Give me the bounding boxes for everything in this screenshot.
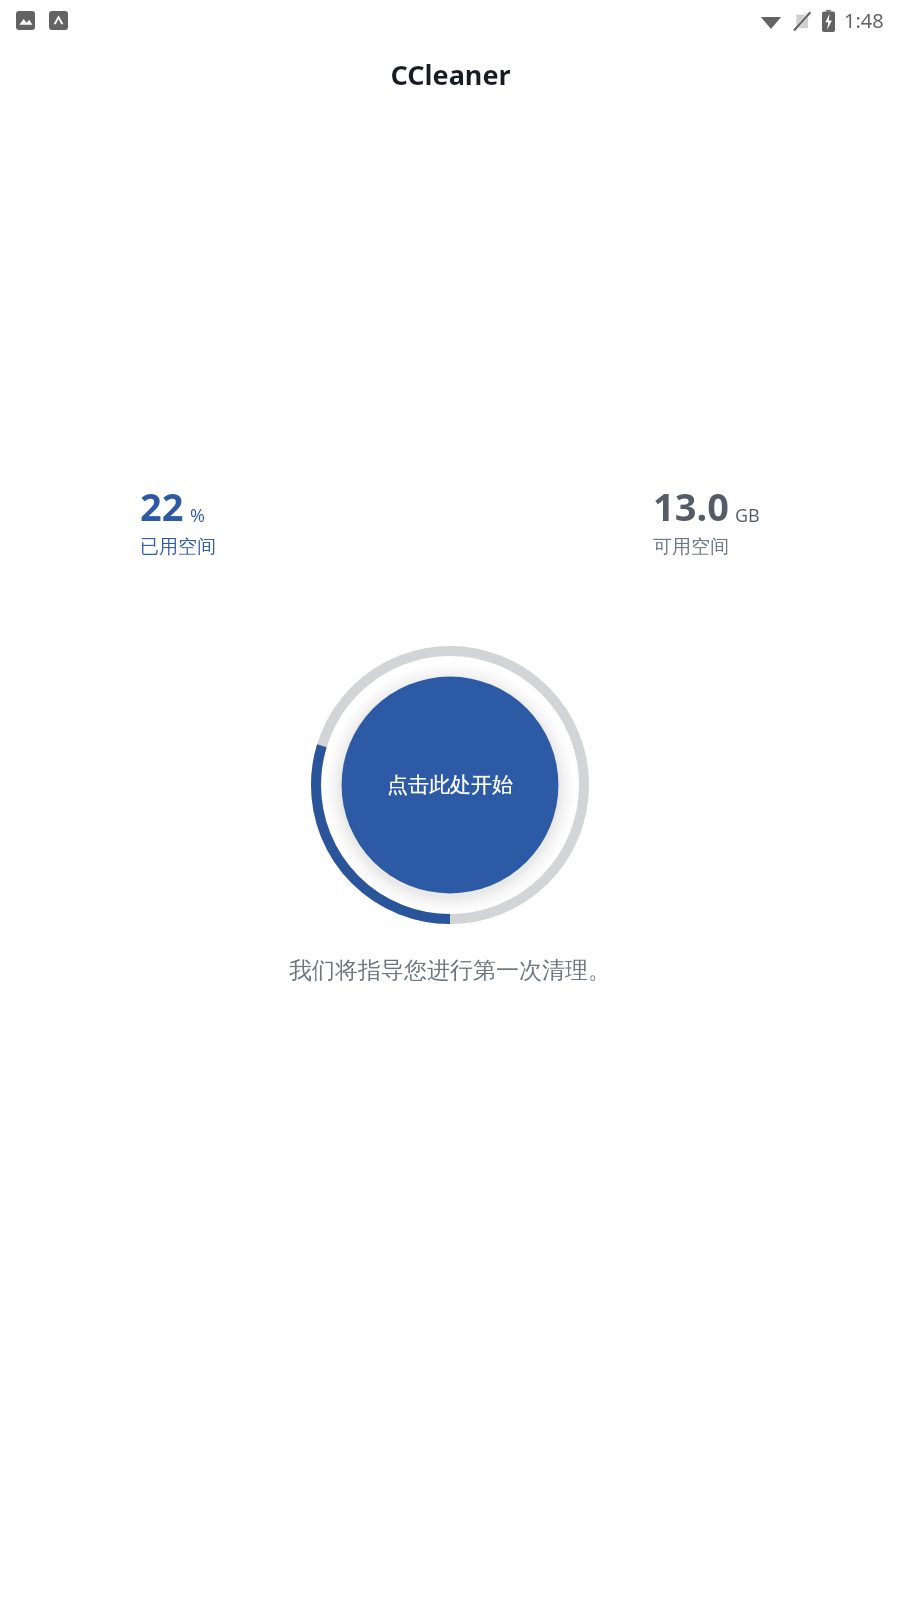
staticText: 点击此处开始 xyxy=(387,772,513,798)
staticText: 已用空间 xyxy=(140,535,216,559)
staticText: 我们将指导您进行第一次清理。 xyxy=(289,956,611,985)
staticText: % xyxy=(190,503,205,528)
staticText: 1:48 xyxy=(844,7,884,34)
staticText: 可用空间 xyxy=(653,535,729,559)
staticText: 13.0 xyxy=(653,480,729,532)
staticText: 22 xyxy=(140,480,184,532)
staticText: GB xyxy=(735,503,760,528)
button[interactable]: 点击此处开始 xyxy=(311,646,589,924)
staticText: CCleaner xyxy=(390,56,511,93)
